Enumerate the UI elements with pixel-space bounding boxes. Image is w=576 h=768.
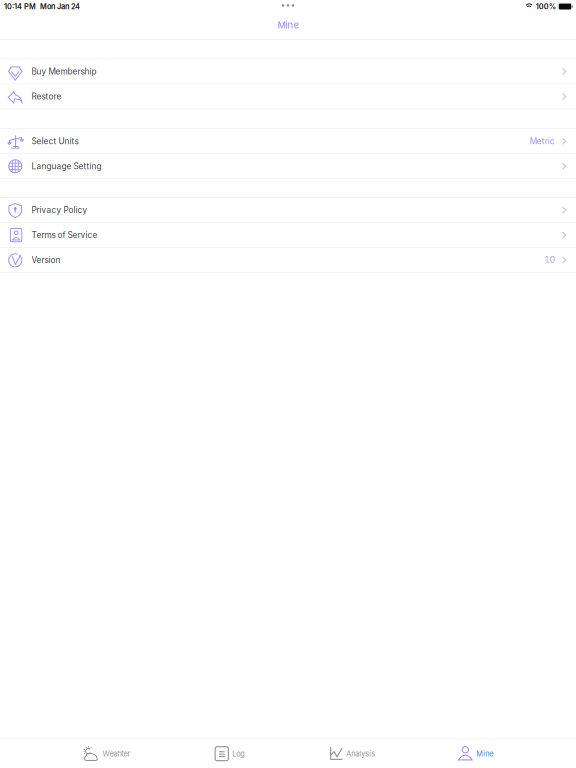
staticText: Analysis — [346, 749, 375, 758]
button[interactable]: Select Units — [0, 129, 576, 154]
staticText: Mine — [277, 19, 298, 31]
staticText: Metric — [530, 136, 555, 146]
button[interactable]: Language Setting — [0, 154, 576, 179]
button[interactable]: Privacy Policy — [0, 198, 576, 223]
button[interactable]: Restore — [0, 84, 576, 109]
button[interactable]: Terms of Service — [0, 223, 576, 248]
staticText: 1.0 — [545, 255, 555, 265]
staticText: Version — [31, 255, 60, 265]
button[interactable]: Buy Membership — [0, 59, 576, 84]
staticText: Restore — [31, 91, 61, 101]
staticText: Log — [232, 749, 244, 758]
staticText: Language Setting — [31, 161, 101, 171]
staticText: 100% — [536, 2, 556, 11]
button[interactable]: Weahter — [45, 739, 168, 768]
staticText: Mine — [476, 749, 493, 758]
staticText: Mon Jan 24 — [40, 2, 80, 11]
button[interactable]: Version — [0, 248, 576, 273]
button[interactable]: Log — [168, 739, 291, 768]
button[interactable]: Analysis — [291, 739, 414, 768]
staticText: Terms of Service — [31, 230, 97, 240]
staticText: Privacy Policy — [31, 205, 87, 215]
staticText: Select Units — [31, 136, 78, 146]
staticText: Weahter — [102, 749, 130, 758]
staticText: Buy Membership — [31, 66, 96, 76]
button[interactable]: Mine — [414, 739, 537, 768]
staticText: 10:14 PM — [4, 2, 36, 11]
